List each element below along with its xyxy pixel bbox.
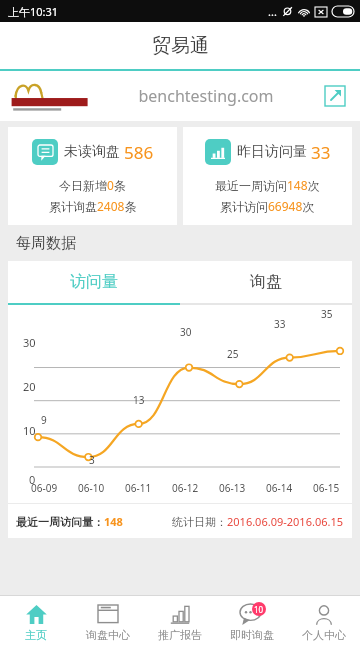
staticText: 主页 bbox=[25, 628, 47, 642]
button[interactable]: 10 bbox=[216, 596, 288, 650]
staticText: 33 bbox=[311, 141, 331, 164]
staticText: 06-13 bbox=[219, 481, 246, 495]
staticText: 今日新增0条 bbox=[59, 177, 126, 193]
staticText: 每周数据 bbox=[16, 234, 76, 253]
staticText: benchtesting.com bbox=[90, 85, 322, 107]
staticText: 3 bbox=[89, 453, 95, 467]
staticText: 贸易通 bbox=[152, 34, 209, 58]
staticText: 35 bbox=[321, 307, 333, 321]
staticText: 累计访问66948次 bbox=[220, 198, 315, 214]
button[interactable]: 推广报告 bbox=[144, 596, 216, 650]
staticText: 9 bbox=[41, 413, 47, 427]
staticText: 询盘 bbox=[250, 272, 282, 292]
staticText: 30 bbox=[23, 335, 36, 350]
staticText: 13 bbox=[133, 393, 145, 407]
staticText: 10 bbox=[23, 423, 36, 438]
staticText: 06-12 bbox=[172, 481, 199, 495]
staticText: ... bbox=[268, 4, 277, 19]
staticText: 累计询盘2408条 bbox=[49, 198, 137, 214]
staticText: 访问量 bbox=[70, 272, 118, 292]
button[interactable]: Open website bbox=[322, 83, 348, 109]
button[interactable]: 主页 bbox=[0, 596, 72, 650]
staticText: 即时询盘 bbox=[230, 628, 274, 642]
staticText: 30 bbox=[180, 325, 192, 339]
staticText: 06-11 bbox=[125, 481, 152, 495]
staticText: 最近一周访问148次 bbox=[215, 177, 320, 193]
staticText: 586 bbox=[124, 141, 154, 164]
staticText: 06-09 bbox=[31, 481, 58, 495]
staticText: 最近一周访问量：148 bbox=[16, 514, 123, 529]
staticText: 33 bbox=[274, 317, 286, 331]
staticText: 个人中心 bbox=[302, 628, 346, 642]
staticText: 10 bbox=[254, 604, 264, 615]
staticText: 昨日访问量 bbox=[237, 143, 307, 161]
staticText: 06-15 bbox=[313, 481, 340, 495]
staticText: 上午10:31 bbox=[8, 4, 59, 19]
button[interactable]: 询盘中心 bbox=[72, 596, 144, 650]
staticText: 统计日期：2016.06.09-2016.06.15 bbox=[172, 514, 344, 529]
staticText: 0 bbox=[29, 472, 36, 487]
staticText: 25 bbox=[227, 347, 239, 361]
staticText: 推广报告 bbox=[158, 628, 202, 642]
button[interactable]: 访问量 bbox=[8, 261, 180, 303]
staticText: 未读询盘 bbox=[64, 143, 120, 161]
button[interactable]: 询盘 bbox=[180, 261, 352, 303]
button[interactable]: 个人中心 bbox=[288, 596, 360, 650]
staticText: 20 bbox=[23, 379, 36, 394]
staticText: 询盘中心 bbox=[86, 628, 130, 642]
staticText: 06-10 bbox=[78, 481, 105, 495]
button[interactable]: 未读询盘 bbox=[8, 127, 177, 225]
staticText: 06-14 bbox=[266, 481, 293, 495]
button[interactable]: 昨日访问量 bbox=[183, 127, 352, 225]
